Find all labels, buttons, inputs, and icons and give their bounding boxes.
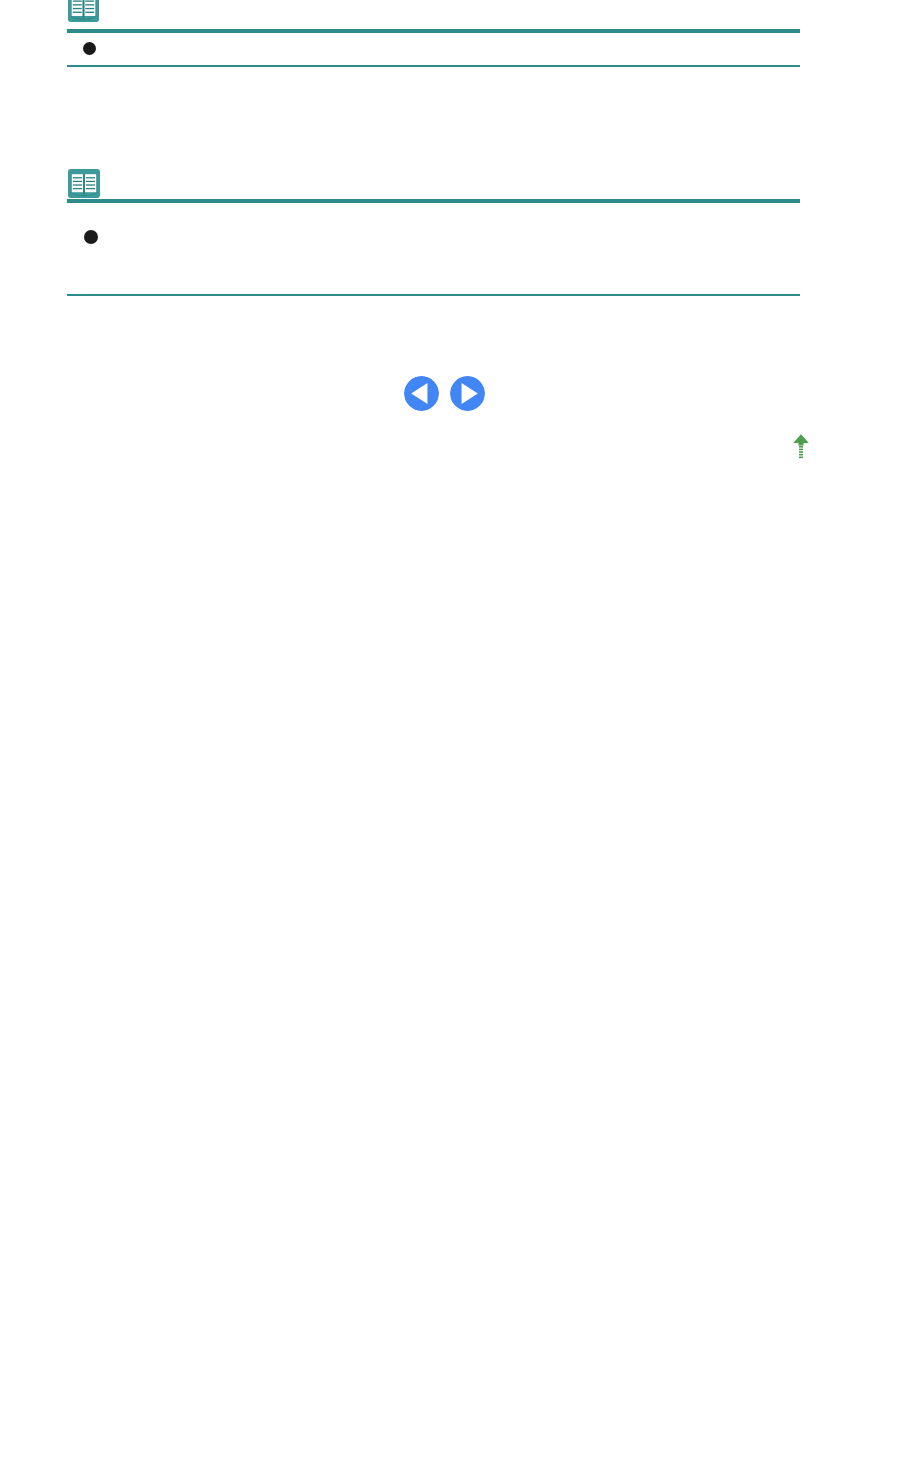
button[interactable]: Previous page [404,376,439,411]
other: Note [68,169,100,198]
other: Note [68,0,99,22]
button[interactable]: Back to top [792,433,810,457]
button[interactable]: Next page [450,376,485,411]
